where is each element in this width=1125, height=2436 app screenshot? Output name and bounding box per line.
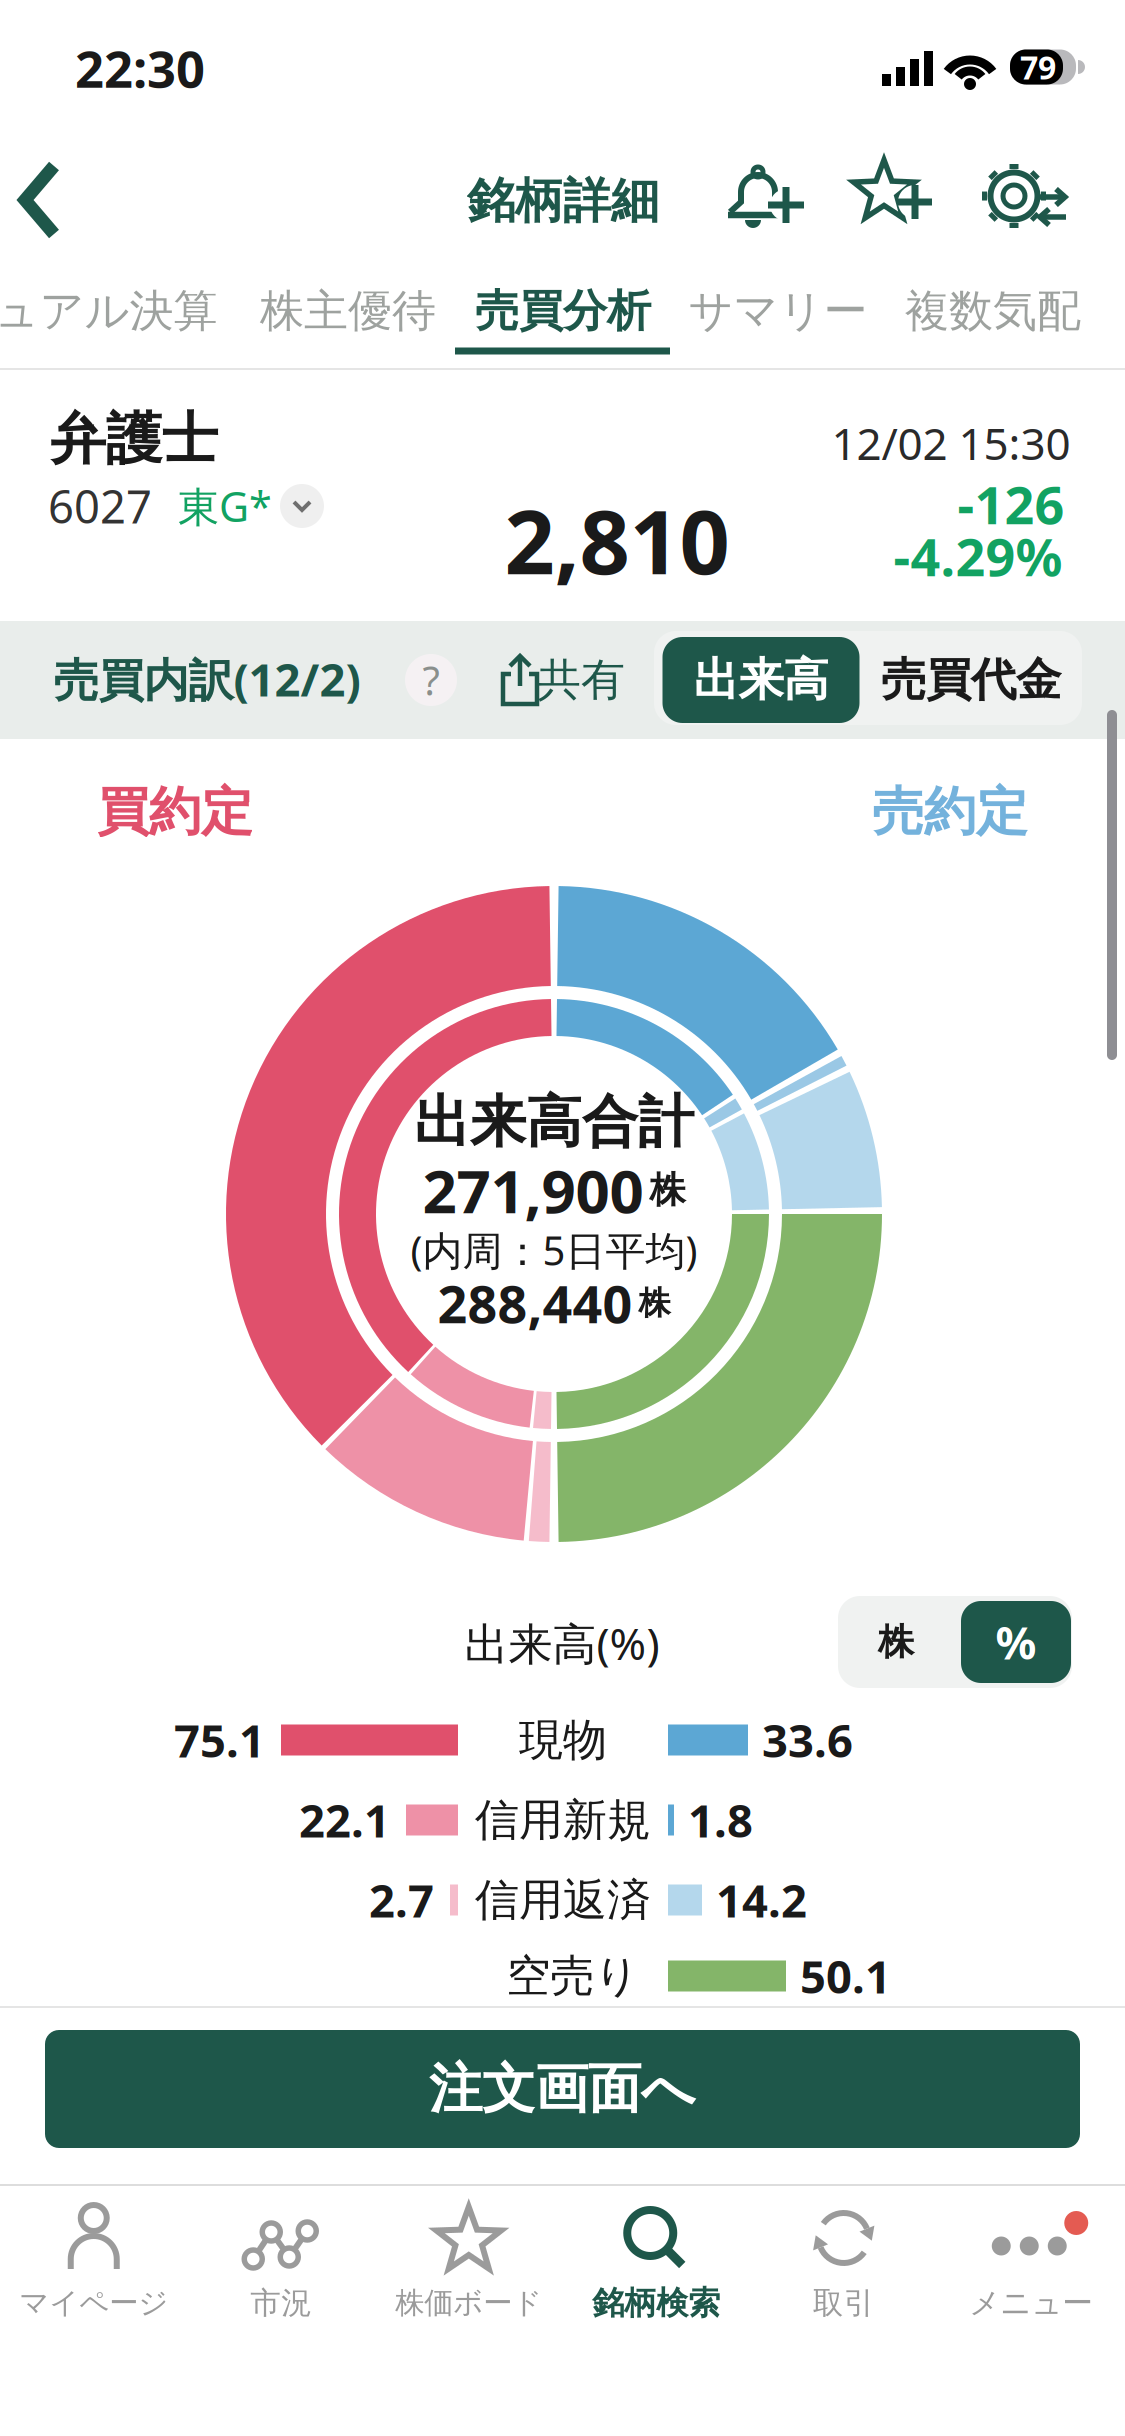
staticText: -4.29%	[893, 521, 1062, 591]
staticText: 出来高	[693, 652, 828, 708]
button[interactable]	[280, 484, 324, 528]
button[interactable]	[968, 150, 1068, 246]
staticText: 33.6	[762, 1710, 853, 1770]
staticText: 売買内訳(12/2)	[53, 649, 360, 709]
staticText: 79	[1020, 46, 1056, 88]
staticText: 株	[878, 1620, 914, 1664]
button[interactable]	[717, 150, 813, 246]
button[interactable]: 市況	[188, 2183, 374, 2329]
staticText: 信用返済	[475, 1873, 651, 1927]
staticText: 288,440	[437, 1268, 632, 1338]
staticText: メニュー	[969, 2284, 1093, 2322]
staticText: 東G*	[178, 479, 272, 533]
staticText: 75.1	[174, 1710, 265, 1770]
staticText: 売買分析	[475, 284, 651, 338]
button[interactable]: 株	[841, 1599, 951, 1685]
button[interactable]: 取引	[751, 2183, 937, 2329]
staticText: 信用新規	[475, 1793, 651, 1847]
staticText: 2.7	[369, 1870, 434, 1930]
staticText: 出来高合計	[414, 1088, 694, 1156]
staticText: ビジュアル決算	[0, 284, 217, 338]
button[interactable]: %	[961, 1601, 1071, 1683]
staticText: (内周：5日平均)	[410, 1223, 697, 1276]
staticText: 6027	[48, 476, 152, 536]
staticText: ?	[422, 653, 439, 706]
staticText: 271,900	[422, 1150, 643, 1230]
staticText: 50.1	[800, 1946, 891, 2006]
staticText: 買約定	[97, 780, 253, 844]
staticText: 空売り	[506, 1949, 639, 2003]
staticText: 弁護士	[50, 405, 218, 473]
staticText: 22:30	[75, 34, 205, 102]
button[interactable]: 売買分析	[475, 284, 651, 338]
staticText: 12/02 15:30	[831, 414, 1070, 472]
button[interactable]: 共有	[501, 652, 629, 708]
staticText: 現物	[519, 1713, 607, 1767]
button[interactable]: ビジュアル決算	[0, 284, 217, 338]
staticText: 2,810	[504, 482, 729, 598]
staticText: 銘柄検索	[592, 2283, 720, 2323]
staticText: 1.8	[688, 1790, 753, 1850]
staticText: 市況	[250, 2284, 312, 2322]
staticText: 銘柄詳細	[467, 171, 659, 230]
button[interactable]: マイページ	[1, 2183, 187, 2329]
staticText: 22.1	[299, 1790, 390, 1850]
staticText: 株価ボード	[395, 2285, 542, 2321]
button[interactable]: 複数気配	[905, 284, 1081, 338]
button[interactable]: 株主優待	[260, 284, 436, 338]
staticText: 株	[638, 1283, 670, 1323]
button[interactable]: サマリー	[688, 284, 867, 338]
staticText: 株	[649, 1168, 685, 1212]
staticText: 共有	[537, 653, 625, 707]
button[interactable]	[9, 160, 85, 240]
staticText: 売約定	[872, 780, 1028, 844]
staticText: 注文画面へ	[429, 2056, 696, 2122]
button[interactable]: ?	[405, 654, 457, 706]
staticText: %	[995, 1612, 1036, 1672]
staticText: -126	[957, 469, 1064, 539]
staticText: 売買代金	[881, 652, 1061, 708]
staticText: 株主優待	[260, 284, 436, 338]
button[interactable]: 株価ボード	[376, 2183, 562, 2329]
button[interactable]: 売買代金	[861, 637, 1081, 723]
button[interactable]: メニュー	[938, 2183, 1124, 2329]
button[interactable]: 注文画面へ	[45, 2030, 1080, 2148]
staticText: 14.2	[716, 1870, 807, 1930]
staticText: 複数気配	[905, 284, 1081, 338]
staticText: マイページ	[19, 2285, 168, 2321]
button[interactable]: 出来高	[662, 637, 859, 723]
staticText: サマリー	[688, 284, 867, 338]
staticText: 取引	[813, 2284, 875, 2322]
button[interactable]	[839, 148, 939, 244]
staticText: 出来高(%)	[464, 1614, 659, 1672]
button[interactable]: 銘柄検索	[563, 2183, 749, 2329]
